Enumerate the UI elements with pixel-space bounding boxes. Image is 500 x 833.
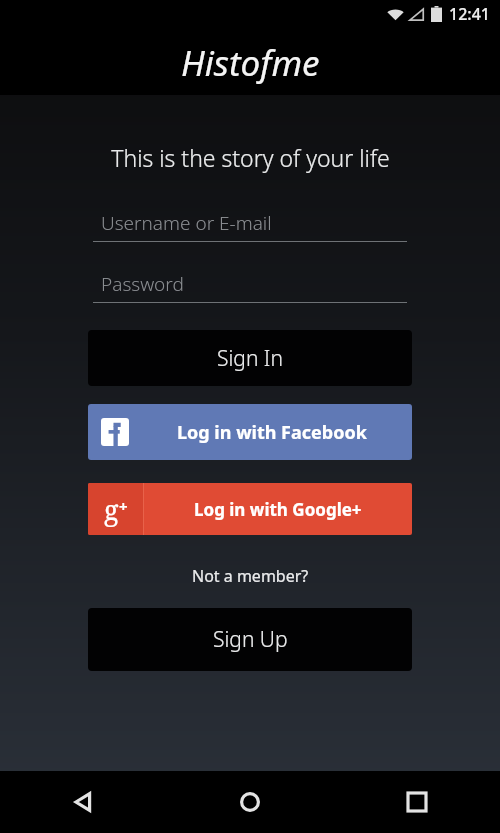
staticText: This is the story of your life xyxy=(111,142,390,173)
button[interactable]: Log in with Facebook xyxy=(88,404,412,460)
button[interactable]: Home xyxy=(166,771,333,833)
button[interactable]: g xyxy=(88,483,412,535)
staticText: g xyxy=(104,491,119,528)
staticText: Not a member? xyxy=(192,565,309,587)
staticText: 12:41 xyxy=(449,3,490,25)
button[interactable]: Password xyxy=(93,271,407,303)
staticText: Username or E-mail xyxy=(101,210,272,236)
staticText: Password xyxy=(101,271,184,297)
staticText: + xyxy=(119,496,128,516)
staticText: Sign Up xyxy=(213,625,288,654)
staticText: Log in with Google+ xyxy=(194,498,362,521)
button[interactable]: Sign In xyxy=(88,330,412,386)
button[interactable]: Sign Up xyxy=(88,608,412,671)
staticText: Histofme xyxy=(181,39,320,87)
button[interactable]: Back xyxy=(0,771,166,833)
button[interactable]: Recent apps xyxy=(333,771,500,833)
staticText: Sign In xyxy=(217,344,283,373)
staticText: Log in with Facebook xyxy=(177,420,367,445)
button[interactable]: Username or E-mail xyxy=(93,210,407,242)
